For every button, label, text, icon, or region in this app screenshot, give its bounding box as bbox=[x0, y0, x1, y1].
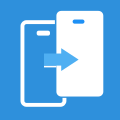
button[interactable]: Transfer data to new phone bbox=[0, 0, 120, 120]
